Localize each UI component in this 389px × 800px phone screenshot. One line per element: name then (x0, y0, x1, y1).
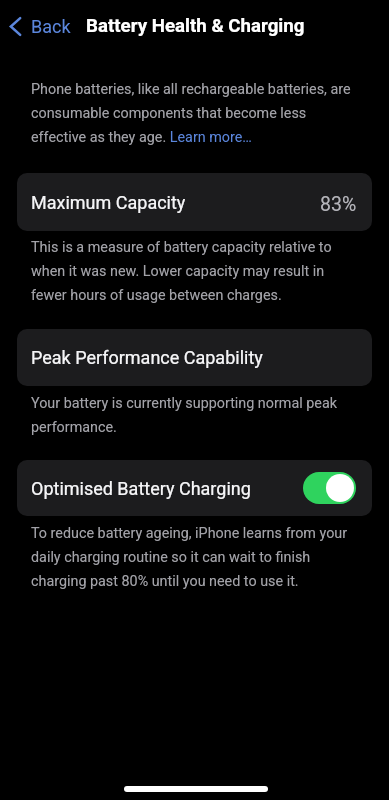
staticText: Phone batteries, like all rechargeable b… (31, 81, 357, 145)
staticText: Peak Performance Capability (31, 347, 263, 368)
staticText: Optimised Battery Charging (31, 478, 251, 499)
button[interactable]: Peak Performance Capability (17, 329, 372, 386)
button[interactable]: Optimised Battery Charging (303, 472, 356, 504)
staticText: To reduce battery ageing, iPhone learns … (31, 525, 357, 589)
staticText: Battery Health & Charging (86, 15, 305, 37)
button[interactable]: Back (0, 10, 79, 43)
staticText: Maximum Capacity (31, 192, 186, 213)
staticText: Back (31, 16, 71, 37)
staticText: 83% (320, 193, 357, 216)
staticText: This is a measure of battery capacity re… (31, 239, 357, 303)
button[interactable]: Maximum Capacity (17, 173, 372, 231)
staticText: Your battery is currently supporting nor… (31, 395, 357, 435)
